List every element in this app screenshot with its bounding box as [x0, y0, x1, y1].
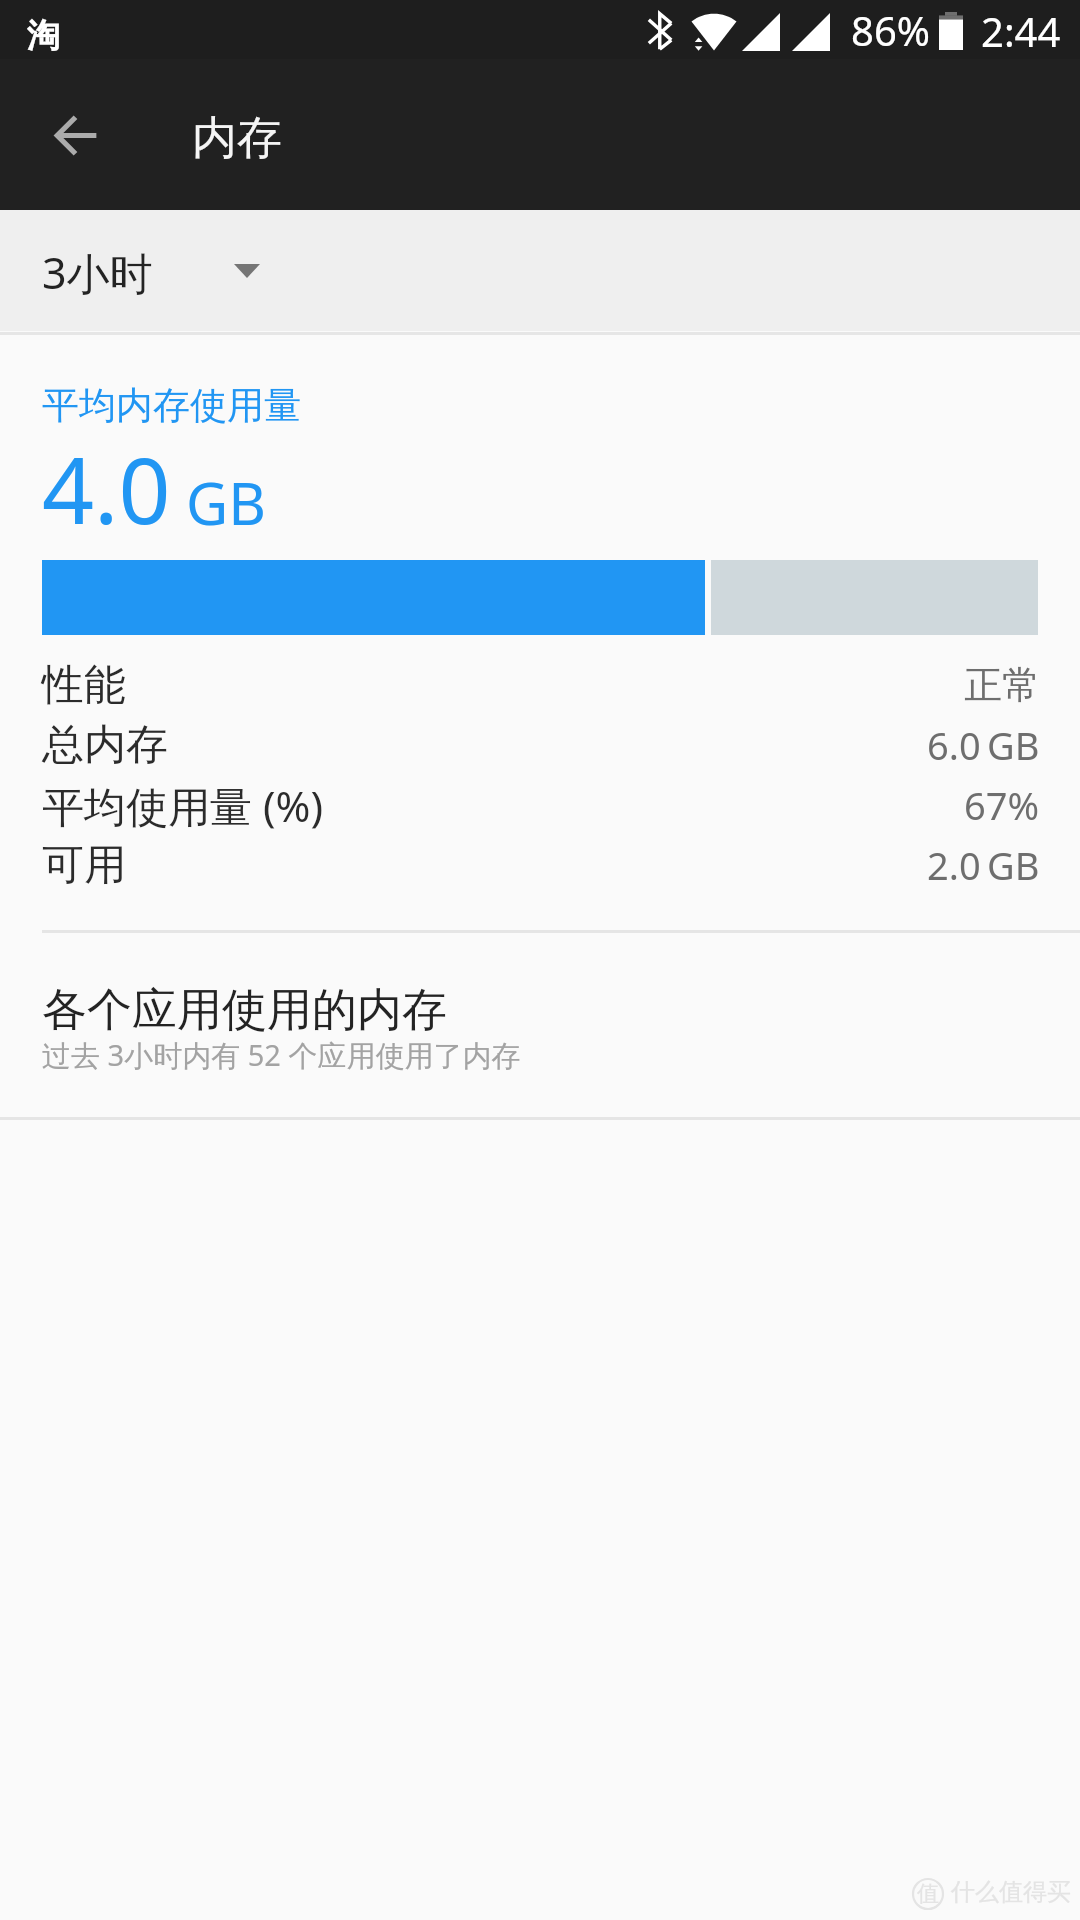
staticText: 什么值得买	[951, 1877, 1071, 1907]
staticText: 86%	[851, 3, 930, 57]
button[interactable]: 可用	[0, 835, 1080, 895]
staticText: GB	[186, 463, 266, 542]
button[interactable]: 平均使用量 (%)	[0, 775, 1080, 835]
other: Mobile signal SIM 2	[792, 13, 830, 51]
staticText: 总内存	[42, 719, 168, 772]
button[interactable]: 3小时	[0, 210, 1080, 331]
staticText: 值	[917, 1880, 939, 1908]
staticText: 可用	[42, 839, 126, 892]
staticText: 2:44	[981, 4, 1061, 58]
button[interactable]: 总内存	[0, 715, 1080, 775]
staticText: 过去 3小时内有 52 个应用使用了内存	[42, 1035, 521, 1075]
other: Bluetooth on	[648, 12, 672, 51]
staticText: 6.0 GB	[927, 719, 1040, 771]
other: Battery 86 percent	[939, 12, 963, 50]
staticText: 2.0 GB	[927, 839, 1040, 891]
button[interactable]: 性能	[0, 655, 1080, 715]
button[interactable]: 各个应用使用的内存	[0, 937, 1080, 1117]
staticText: 67%	[964, 779, 1040, 831]
staticText: 性能	[42, 659, 126, 712]
staticText: 内存	[192, 110, 282, 167]
staticText: 平均使用量 (%)	[42, 777, 324, 834]
staticText: 正常	[964, 661, 1040, 709]
staticText: 淘	[27, 15, 60, 57]
staticText: 4.0	[42, 427, 171, 551]
staticText: 各个应用使用的内存	[42, 982, 447, 1039]
other: Open period menu	[234, 264, 260, 278]
other: Wi-Fi signal full	[691, 13, 737, 51]
button[interactable]: Back	[30, 90, 120, 180]
staticText: 3小时	[42, 243, 153, 302]
other: Mobile signal SIM 1	[742, 13, 780, 51]
staticText: 平均内存使用量	[42, 382, 301, 429]
